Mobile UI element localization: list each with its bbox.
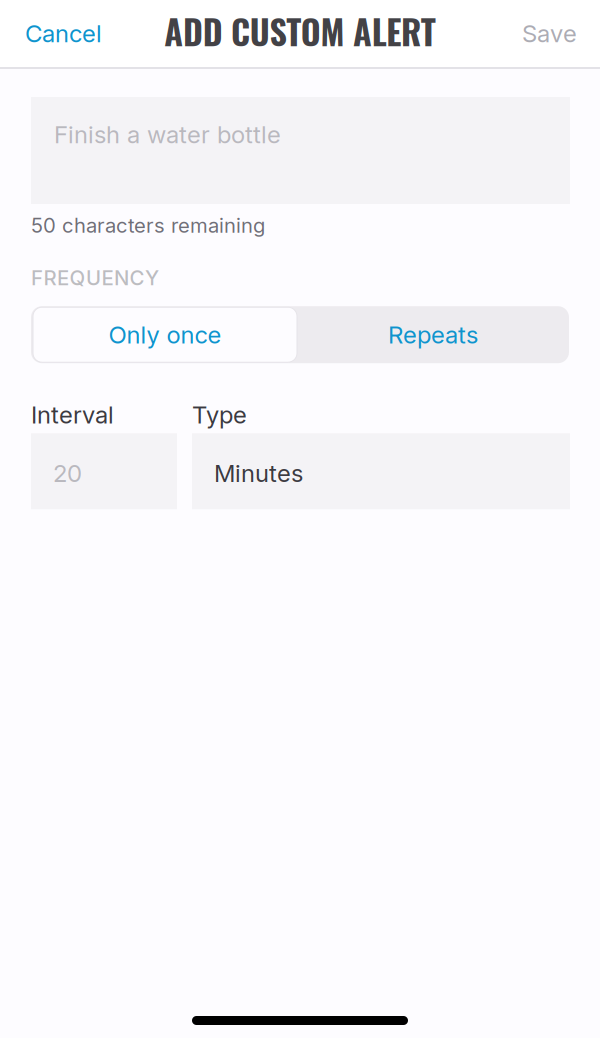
- button[interactable]: Only once: [33, 307, 297, 362]
- button[interactable]: 20: [31, 433, 177, 509]
- staticText: 50 characters remaining: [31, 213, 265, 237]
- staticText: Cancel: [25, 19, 102, 48]
- staticText: Repeats: [388, 320, 478, 349]
- button[interactable]: Finish a water bottle: [31, 97, 570, 204]
- staticText: ADD CUSTOM ALERT: [164, 6, 436, 56]
- staticText: 20: [53, 459, 82, 488]
- staticText: Only once: [108, 320, 221, 349]
- staticText: FREQUENCY: [31, 265, 159, 290]
- button[interactable]: Save: [496, 0, 600, 67]
- staticText: Save: [522, 19, 577, 48]
- button[interactable]: Minutes: [192, 433, 570, 509]
- button[interactable]: Cancel: [0, 0, 128, 67]
- staticText: Interval: [31, 400, 114, 429]
- staticText: Finish a water bottle: [54, 120, 281, 149]
- button[interactable]: Repeats: [297, 306, 569, 363]
- staticText: Minutes: [214, 459, 303, 488]
- staticText: Type: [192, 400, 247, 429]
